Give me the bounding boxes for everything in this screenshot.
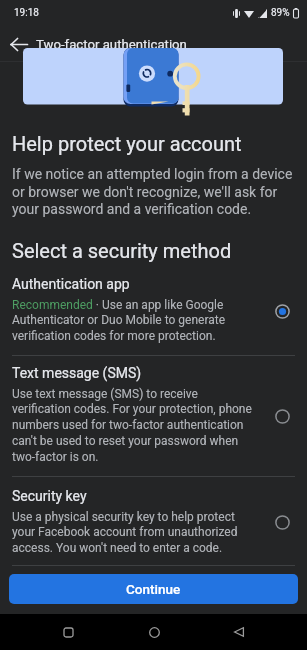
staticText: Use text message (SMS) to receive verifi… [12,387,256,464]
button[interactable]: Home [136,614,172,650]
button[interactable]: Continue [9,574,298,604]
button[interactable]: Text message (SMS) [0,356,307,476]
button[interactable]: Authentication app [0,267,307,355]
staticText: Text message (SMS) [12,365,142,381]
staticText: 19:18 [14,7,39,19]
staticText: Two-factor authentication [36,37,187,52]
staticText: Help protect your account [12,132,242,155]
button[interactable]: Back [4,30,33,59]
staticText: Use a physical security key to help prot… [12,510,256,554]
staticText: Select a security method [12,239,232,262]
staticText: 89% [271,7,290,19]
staticText: If we notice an attempted login from a d… [12,166,296,217]
button[interactable]: Security key [0,479,307,565]
staticText: Recommended · Use an app like Google Aut… [12,298,256,343]
staticText: Security key [12,488,87,504]
staticText: Continue [126,581,181,597]
button[interactable]: Recent apps [50,614,86,650]
staticText: Authentication app [12,276,130,292]
button[interactable]: Back [221,614,257,650]
